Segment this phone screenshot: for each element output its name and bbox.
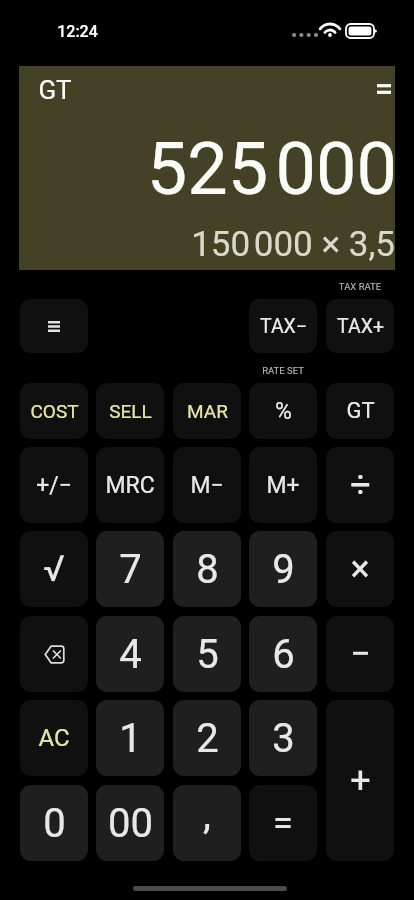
staticText: 6 (272, 631, 295, 678)
staticText: AC (38, 724, 70, 752)
staticText: 9 (272, 546, 295, 593)
button[interactable]: GT (29, 70, 81, 110)
button[interactable]: MAR (173, 383, 241, 439)
button[interactable]: Menu (20, 299, 88, 353)
staticText: 12:24 (57, 22, 98, 41)
button[interactable]: COST (20, 383, 88, 439)
button[interactable]: 7 (96, 531, 164, 607)
staticText: = (273, 802, 293, 844)
staticText: RATE SET (249, 365, 317, 376)
button[interactable]: , (173, 785, 241, 861)
button[interactable]: MRC (96, 447, 164, 523)
staticText: 1 (119, 715, 142, 762)
button[interactable]: SELL (96, 383, 164, 439)
staticText: × (350, 548, 370, 590)
button[interactable]: % (249, 383, 317, 439)
button[interactable]: 0 (20, 785, 88, 861)
staticText: 4 (119, 631, 142, 678)
button[interactable]: √ (20, 531, 88, 607)
staticText: , (203, 791, 211, 838)
button[interactable]: 1 (96, 700, 164, 776)
button[interactable]: TAX+ (326, 299, 394, 353)
staticText: GT (38, 75, 72, 105)
button[interactable]: ÷ (326, 447, 394, 523)
button[interactable]: × (326, 531, 394, 607)
staticText: − (350, 633, 371, 675)
button[interactable]: + (326, 700, 394, 861)
staticText: % (275, 398, 292, 425)
staticText: GT (346, 398, 375, 424)
button[interactable]: Backspace (20, 616, 88, 692)
staticText: 2 (196, 715, 219, 762)
staticText: 00 (108, 800, 153, 847)
staticText: 150 000 × 3,5 (19, 224, 395, 265)
staticText: + (350, 760, 371, 802)
staticText: ÷ (350, 464, 371, 506)
staticText: COST (30, 400, 79, 422)
staticText: TAX+ (337, 315, 384, 338)
staticText: M+ (266, 472, 300, 499)
staticText: +/− (36, 472, 72, 499)
button[interactable]: M− (173, 447, 241, 523)
button[interactable]: 4 (96, 616, 164, 692)
staticText: 8 (196, 546, 219, 593)
staticText: MRC (105, 472, 155, 499)
button[interactable]: − (326, 616, 394, 692)
button[interactable]: 00 (96, 785, 164, 861)
button[interactable]: +/− (20, 447, 88, 523)
button[interactable]: 9 (249, 531, 317, 607)
staticText: M− (190, 472, 224, 499)
staticText: SELL (109, 400, 152, 422)
staticText: 7 (119, 546, 142, 593)
staticText: TAX− (260, 315, 307, 338)
staticText: 5 (196, 631, 219, 678)
button[interactable]: 2 (173, 700, 241, 776)
staticText: 525 000 (21, 127, 397, 211)
staticText: 3 (272, 715, 295, 762)
staticText: MAR (187, 400, 228, 422)
staticText: √ (43, 548, 65, 590)
button[interactable]: 5 (173, 616, 241, 692)
button[interactable]: M+ (249, 447, 317, 523)
button[interactable]: 6 (249, 616, 317, 692)
button[interactable]: Memory total (369, 74, 399, 104)
button[interactable]: 8 (173, 531, 241, 607)
staticText: TAX RATE (326, 281, 394, 292)
button[interactable]: GT (326, 383, 394, 439)
button[interactable]: = (249, 785, 317, 861)
staticText: 0 (43, 800, 66, 847)
button[interactable]: TAX− (249, 299, 317, 353)
button[interactable]: 3 (249, 700, 317, 776)
button[interactable]: AC (20, 700, 88, 776)
